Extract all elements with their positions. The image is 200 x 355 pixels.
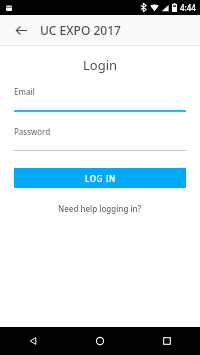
staticText: Login [0, 56, 200, 74]
button[interactable]: Password [0, 126, 200, 151]
button[interactable]: Need help logging in? [52, 201, 148, 216]
button[interactable]: LOG IN [14, 168, 186, 188]
button[interactable]: Back [9, 18, 33, 42]
button[interactable]: Back [0, 327, 66, 355]
staticText: Password [14, 126, 51, 137]
button[interactable]: Email [0, 86, 200, 112]
staticText: Need help logging in? [58, 203, 142, 214]
staticText: LOG IN [85, 173, 116, 184]
button[interactable]: Recent apps [133, 327, 200, 355]
staticText: 4:44 [180, 2, 196, 13]
button[interactable]: Home [66, 327, 133, 355]
staticText: Email [14, 86, 35, 97]
staticText: UC EXPO 2017 [40, 22, 121, 38]
